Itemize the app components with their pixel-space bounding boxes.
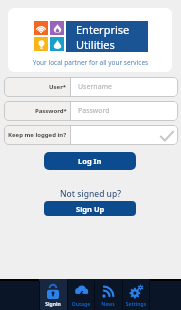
staticText: Password* — [35, 107, 67, 115]
button[interactable]: Signin — [39, 279, 67, 310]
button[interactable]: Settings — [122, 279, 150, 310]
staticText: Password — [78, 106, 110, 116]
button[interactable]: Sign Up — [44, 201, 136, 216]
staticText: Keep me logged in? — [8, 131, 67, 139]
staticText: Utilities — [76, 37, 115, 52]
button[interactable]: Password* — [4, 101, 178, 121]
staticText: Settings — [122, 301, 150, 308]
staticText: Username — [78, 82, 113, 92]
button[interactable]: User* — [4, 77, 178, 97]
staticText: News — [94, 301, 122, 308]
staticText: Outage — [67, 301, 95, 308]
staticText: Your local partner for all your services — [0, 58, 181, 67]
staticText: Sign Up — [76, 204, 105, 214]
staticText: Log In — [78, 156, 102, 166]
button[interactable]: Keep me logged in? — [4, 125, 178, 145]
staticText: User* — [49, 83, 67, 91]
staticText: Not signed up? — [0, 188, 181, 200]
staticText: Signin — [39, 301, 67, 308]
button[interactable]: News — [94, 279, 122, 310]
button[interactable]: Outage — [67, 279, 95, 310]
staticText: Enterprise — [76, 22, 130, 37]
button[interactable]: Log In — [44, 152, 136, 170]
